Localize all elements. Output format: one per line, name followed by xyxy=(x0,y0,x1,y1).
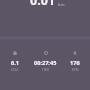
staticText: BPM xyxy=(72,68,79,72)
staticText: KCAL xyxy=(11,68,19,72)
staticText: 00:27:45 xyxy=(34,59,57,67)
staticText: 6.1 xyxy=(11,59,19,67)
button[interactable]: BPM xyxy=(69,51,81,72)
staticText: TIME xyxy=(42,68,50,72)
staticText: 176 xyxy=(70,59,80,67)
staticText: 0.01 xyxy=(30,0,55,9)
other: KCAL xyxy=(13,51,17,55)
staticText: km xyxy=(58,1,65,7)
button[interactable]: TIME xyxy=(33,51,58,72)
button[interactable]: KCAL xyxy=(10,51,20,72)
other: TIME xyxy=(44,51,48,55)
other: BPM xyxy=(73,51,77,55)
